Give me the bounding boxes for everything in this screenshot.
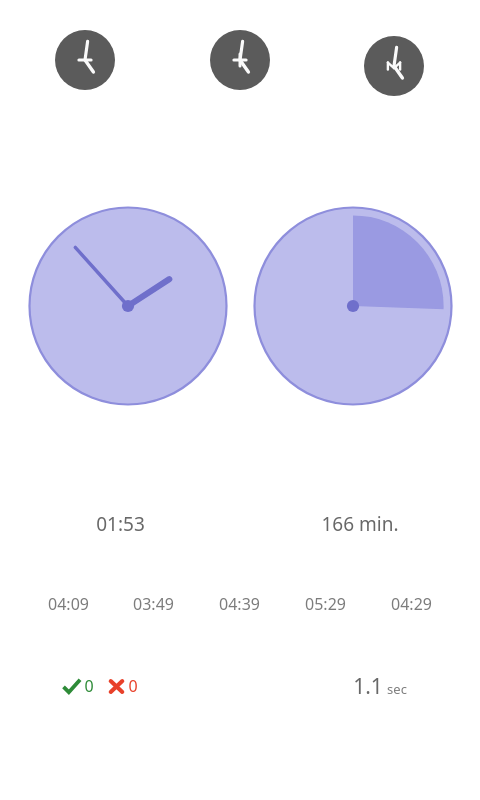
button[interactable]: 04:39	[196, 593, 282, 615]
button[interactable]: Increase time	[210, 30, 270, 90]
button[interactable]: 05:29	[282, 593, 368, 615]
staticText: 1.1	[353, 672, 383, 701]
button[interactable]: 03:49	[111, 593, 196, 615]
button[interactable]: Current time 01:53	[28, 206, 228, 406]
staticText: 0	[84, 675, 94, 697]
button[interactable]: Decrease time	[55, 30, 115, 90]
button[interactable]: 04:09	[26, 593, 111, 615]
staticText: 01:53	[96, 511, 145, 537]
staticText: 05:29	[305, 593, 346, 615]
staticText: 0	[128, 675, 138, 697]
button[interactable]: Duration 166 minutes	[253, 206, 453, 406]
staticText: 04:29	[391, 593, 432, 615]
button[interactable]: Manual time	[364, 36, 424, 96]
staticText: 03:49	[133, 593, 174, 615]
staticText: 04:39	[219, 593, 260, 615]
staticText: sec	[387, 680, 407, 698]
button[interactable]: 04:29	[368, 593, 454, 615]
staticText: 04:09	[48, 593, 89, 615]
staticText: 166 min.	[321, 511, 399, 537]
